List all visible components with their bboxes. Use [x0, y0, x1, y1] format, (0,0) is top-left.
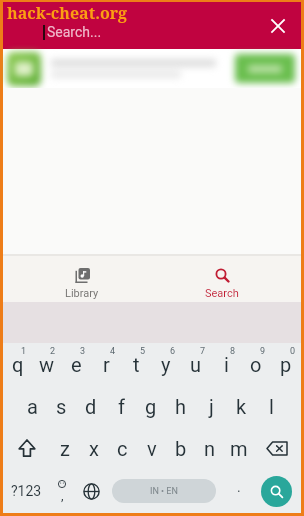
- staticText: Library: [65, 287, 99, 300]
- staticText: ,: [61, 488, 64, 503]
- button[interactable]: z: [51, 427, 79, 469]
- staticText: IN • EN: [150, 486, 178, 497]
- button[interactable]: g: [136, 385, 166, 427]
- button[interactable]: h: [166, 385, 196, 427]
- staticText: o: [250, 353, 262, 376]
- button[interactable]: a: [18, 385, 47, 427]
- button[interactable]: b: [166, 427, 195, 469]
- button[interactable]: ,: [54, 479, 70, 503]
- staticText: x: [89, 437, 99, 460]
- staticText: e: [71, 353, 82, 376]
- button[interactable]: i: [211, 343, 241, 385]
- staticText: 6: [170, 346, 176, 357]
- staticText: Search: [205, 287, 239, 300]
- staticText: 8: [230, 346, 236, 357]
- staticText: 5: [140, 346, 146, 357]
- button[interactable]: .: [237, 479, 241, 495]
- button[interactable]: f: [106, 385, 136, 427]
- staticText: k: [236, 395, 247, 418]
- staticText: p: [280, 353, 292, 376]
- staticText: u: [190, 353, 202, 376]
- staticText: 4: [110, 346, 116, 357]
- button[interactable]: d: [76, 385, 106, 427]
- button[interactable]: [261, 476, 292, 507]
- staticText: 7: [200, 346, 206, 357]
- staticText: q: [12, 353, 24, 376]
- staticText: d: [85, 395, 97, 418]
- staticText: 1: [21, 346, 27, 357]
- button[interactable]: IN • EN: [112, 479, 216, 503]
- staticText: r: [103, 353, 110, 376]
- button[interactable]: y: [151, 343, 181, 385]
- button[interactable]: j: [196, 385, 226, 427]
- button[interactable]: e: [61, 343, 91, 385]
- staticText: 9: [260, 346, 266, 357]
- staticText: g: [145, 395, 157, 418]
- button[interactable]: r: [91, 343, 121, 385]
- button[interactable]: ?123: [11, 483, 42, 499]
- staticText: Search...: [47, 24, 102, 40]
- button[interactable]: u: [181, 343, 211, 385]
- staticText: a: [27, 395, 38, 418]
- button[interactable]: v: [137, 427, 166, 469]
- button[interactable]: c: [108, 427, 137, 469]
- button[interactable]: [82, 482, 101, 501]
- staticText: h: [175, 395, 187, 418]
- button[interactable]: p: [271, 343, 301, 385]
- staticText: n: [204, 437, 216, 460]
- button[interactable]: w: [32, 343, 61, 385]
- button[interactable]: Search: [152, 256, 292, 302]
- staticText: c: [117, 437, 128, 460]
- button[interactable]: s: [47, 385, 76, 427]
- staticText: s: [56, 395, 67, 418]
- button[interactable]: m: [224, 427, 253, 469]
- staticText: y: [161, 353, 171, 376]
- staticText: l: [269, 395, 274, 418]
- button[interactable]: [3, 49, 301, 88]
- button[interactable]: q: [3, 343, 32, 385]
- staticText: w: [39, 353, 55, 376]
- button[interactable]: k: [226, 385, 256, 427]
- staticText: v: [147, 437, 157, 460]
- button[interactable]: t: [121, 343, 151, 385]
- button[interactable]: [3, 427, 51, 469]
- staticText: 0: [290, 346, 296, 357]
- button[interactable]: n: [195, 427, 224, 469]
- staticText: m: [230, 437, 248, 460]
- button[interactable]: l: [256, 385, 286, 427]
- button[interactable]: [253, 427, 301, 469]
- button[interactable]: x: [79, 427, 108, 469]
- staticText: hack-cheat.org: [7, 2, 128, 24]
- staticText: f: [118, 395, 125, 418]
- staticText: t: [133, 353, 140, 376]
- staticText: 3: [80, 346, 86, 357]
- button[interactable]: o: [241, 343, 271, 385]
- staticText: i: [224, 353, 229, 376]
- button[interactable]: [268, 16, 288, 36]
- button[interactable]: Library: [12, 256, 152, 302]
- staticText: b: [175, 437, 187, 460]
- staticText: 2: [50, 346, 56, 357]
- staticText: j: [209, 395, 214, 418]
- staticText: z: [60, 437, 70, 460]
